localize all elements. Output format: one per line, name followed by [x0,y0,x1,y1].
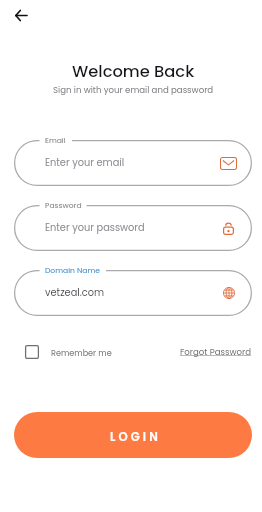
staticText: Enter your email [45,156,125,170]
staticText: Remember me [51,347,112,358]
button[interactable]: Forgot Password [180,346,252,358]
staticText: Email [45,135,66,146]
button[interactable]: Email [14,140,252,186]
staticText: Forgot Password [180,346,252,358]
staticText: LOGIN [110,429,161,445]
staticText: Welcome Back [72,60,195,83]
button[interactable]: Password [14,205,252,251]
staticText: Domain Name [45,265,100,276]
staticText: Password [45,200,82,211]
staticText: Sign in with your email and password [53,84,214,96]
button[interactable]: Back [8,2,34,28]
button[interactable]: Domain Name [14,270,252,316]
button[interactable]: Remember me [25,345,112,359]
button[interactable]: LOGIN [14,412,252,458]
staticText: Enter your password [45,221,145,235]
staticText: vetzeal.com [45,286,105,300]
